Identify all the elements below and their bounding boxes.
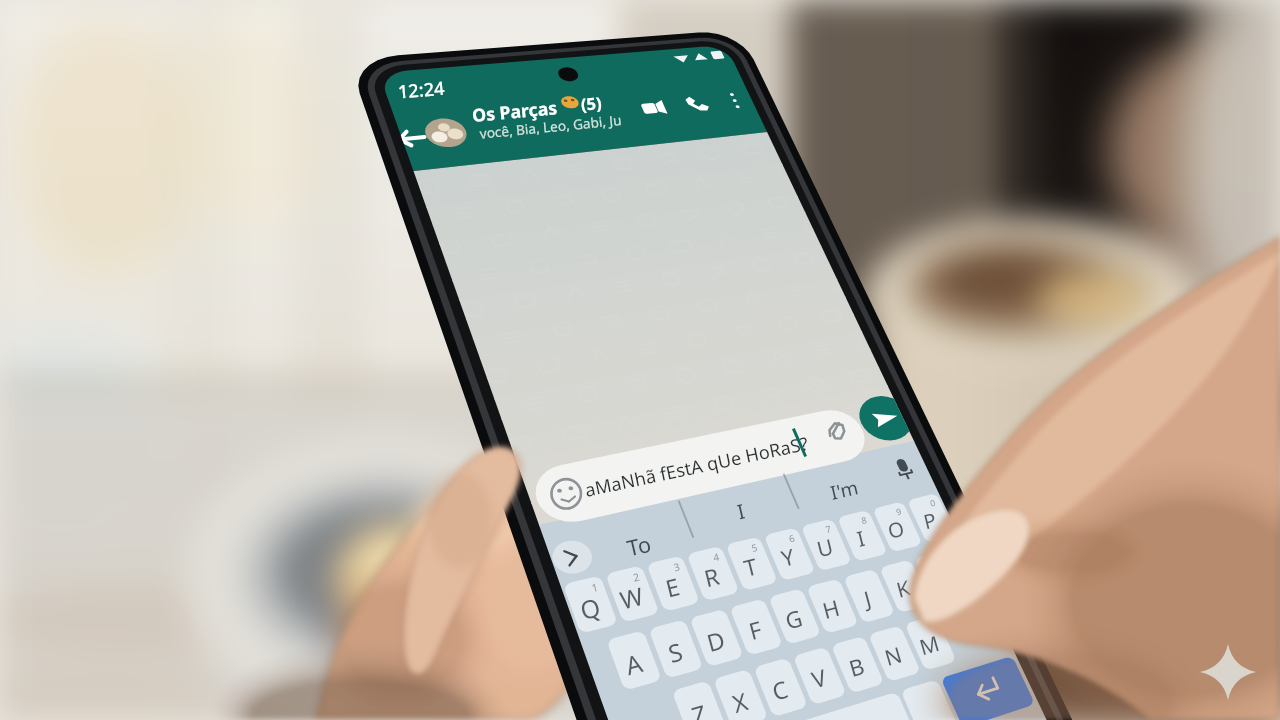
button[interactable]: Expand toolbar xyxy=(550,526,602,576)
button[interactable]: Send xyxy=(850,394,912,456)
button[interactable]: More options xyxy=(718,74,758,126)
button[interactable]: Hand holding phone with WhatsApp group c… xyxy=(0,0,1280,720)
button[interactable]: Message input: aMaNhã fEstA qUe HoRaS? xyxy=(532,442,862,526)
button[interactable]: Suggestion I xyxy=(706,500,790,546)
button[interactable]: Enter xyxy=(938,662,1008,720)
button[interactable]: Voice call xyxy=(678,78,722,130)
button[interactable]: Suggestion I'm xyxy=(790,470,900,518)
button[interactable]: Voice message xyxy=(880,446,924,492)
button[interactable]: Emoji xyxy=(534,470,584,520)
button[interactable]: Group photo xyxy=(424,104,476,160)
button[interactable]: Os Parças (5) — você, Bia, Leo, Gabi, Ju xyxy=(468,86,648,156)
button[interactable]: Attach xyxy=(818,410,862,458)
button[interactable]: Back xyxy=(388,108,446,166)
button[interactable]: Suggestion To xyxy=(602,518,706,566)
button[interactable]: Keyboard xyxy=(560,560,970,720)
button[interactable]: Video call xyxy=(632,82,678,136)
